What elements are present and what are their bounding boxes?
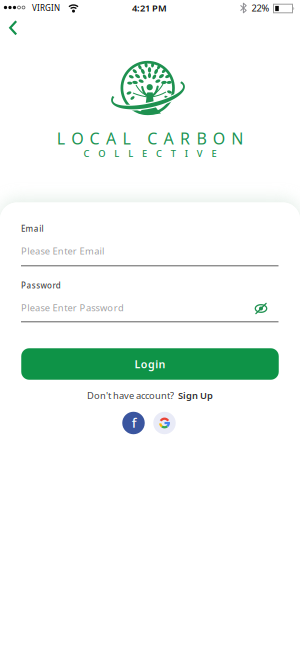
staticText: Login (134, 357, 166, 371)
staticText: L (57, 128, 65, 149)
button[interactable]: Back (0, 14, 28, 42)
staticText: 4:21 PM (132, 2, 167, 14)
button[interactable]: Sign in with Google (153, 412, 176, 434)
button[interactable]: Sign in with Facebook (122, 412, 145, 434)
staticText: C (147, 128, 157, 149)
button[interactable]: Login (21, 348, 279, 380)
button[interactable]: Sign Up (178, 389, 213, 401)
staticText: Don't have account? (87, 389, 174, 401)
staticText: C (90, 128, 100, 149)
staticText: B (196, 128, 206, 149)
staticText: Please Enter Password (21, 301, 124, 314)
staticText: N (231, 128, 243, 149)
staticText: R (180, 128, 190, 149)
staticText: C (156, 147, 162, 160)
staticText: E (142, 147, 147, 160)
staticText: L (122, 128, 130, 149)
staticText: E (212, 147, 217, 160)
staticText: C (83, 147, 89, 160)
staticText: Sign Up (178, 389, 213, 401)
staticText: I (185, 147, 188, 160)
staticText: Email (21, 223, 44, 234)
staticText: O (98, 147, 105, 160)
staticText: O (71, 128, 83, 149)
staticText: L (128, 147, 133, 160)
staticText: O (213, 128, 225, 149)
staticText: A (106, 128, 116, 149)
staticText: 22% (251, 2, 269, 14)
staticText: f (132, 414, 137, 431)
staticText: T (171, 147, 176, 160)
staticText: VIRGIN (32, 2, 60, 13)
staticText: L (114, 147, 119, 160)
button[interactable]: Show password (248, 295, 274, 321)
staticText: V (197, 147, 203, 160)
staticText: A (164, 128, 174, 149)
staticText: Please Enter Email (21, 245, 104, 257)
staticText: Password (21, 280, 61, 291)
